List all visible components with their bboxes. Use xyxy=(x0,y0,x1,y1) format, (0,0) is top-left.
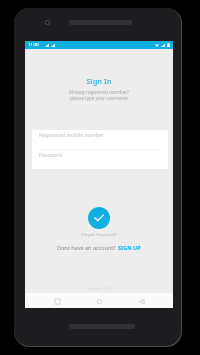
button[interactable]: Password xyxy=(32,150,168,169)
button[interactable]: Sign In xyxy=(88,207,110,229)
button[interactable]: Back xyxy=(134,294,148,308)
staticText: Registered mobile number xyxy=(39,131,105,138)
button[interactable]: Registered mobile number xyxy=(32,130,168,149)
button[interactable]: SIGN UP xyxy=(118,244,141,251)
staticText: Dont have an account? xyxy=(57,244,118,251)
staticText: 11:30 xyxy=(28,42,39,48)
staticText: SIGN UP xyxy=(118,244,141,251)
button[interactable]: Recents xyxy=(50,294,64,308)
staticText: Sign In xyxy=(25,76,173,86)
staticText: please type your username xyxy=(25,95,173,101)
button[interactable]: Forgot Password? xyxy=(25,232,173,238)
button[interactable]: Home xyxy=(92,294,106,308)
staticText: Already registered member? xyxy=(25,89,173,95)
staticText: Password xyxy=(39,151,63,158)
staticText: Forgot Password? xyxy=(25,232,173,238)
